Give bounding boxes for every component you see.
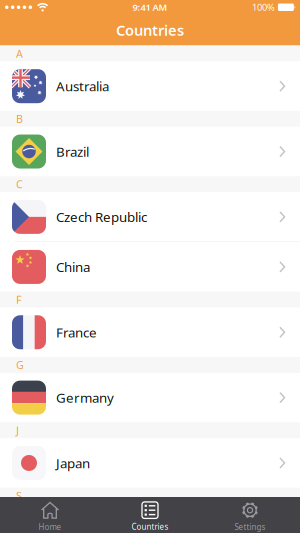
button[interactable]: Australia: [0, 61, 300, 111]
staticText: F: [16, 292, 22, 307]
button[interactable]: Japan: [0, 438, 300, 488]
button[interactable]: Countries: [100, 502, 200, 532]
staticText: J: [16, 423, 19, 437]
staticText: France: [56, 323, 97, 341]
staticText: S: [16, 489, 22, 503]
button[interactable]: Czech Republic: [0, 192, 300, 242]
button[interactable]: Settings: [200, 502, 300, 532]
staticText: Home: [38, 522, 61, 532]
staticText: China: [56, 258, 90, 276]
staticText: A: [16, 46, 23, 61]
button[interactable]: Germany: [0, 373, 300, 422]
staticText: Australia: [56, 77, 109, 95]
button[interactable]: Home: [0, 502, 100, 532]
staticText: Countries: [116, 20, 184, 40]
button[interactable]: France: [0, 308, 300, 357]
staticText: Brazil: [56, 143, 89, 160]
staticText: Japan: [56, 454, 90, 472]
button[interactable]: Brazil: [0, 127, 300, 176]
staticText: G: [16, 358, 24, 372]
staticText: 100%: [252, 1, 275, 13]
staticText: B: [16, 112, 23, 126]
staticText: 9:41 AM: [132, 1, 167, 13]
staticText: C: [16, 177, 23, 191]
staticText: Settings: [234, 522, 265, 532]
staticText: Czech Republic: [56, 208, 147, 226]
staticText: Germany: [56, 389, 114, 406]
button[interactable]: China: [0, 242, 300, 292]
staticText: Countries: [131, 521, 168, 532]
